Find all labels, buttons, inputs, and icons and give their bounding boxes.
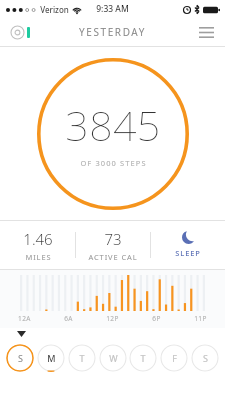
staticText: 12A xyxy=(18,314,31,323)
staticText: SLEEP xyxy=(175,248,201,258)
staticText: 73 xyxy=(104,229,122,249)
staticText: 12P xyxy=(106,314,119,323)
button[interactable]: W xyxy=(99,344,127,372)
staticText: T xyxy=(140,352,146,364)
button[interactable]: F xyxy=(160,344,188,372)
staticText: 6P xyxy=(152,314,161,323)
button[interactable]: T xyxy=(129,344,157,372)
staticText: S xyxy=(203,352,208,364)
staticText: 11P xyxy=(194,314,207,323)
staticText: Verizon xyxy=(40,4,69,15)
staticText: 3845 xyxy=(65,97,161,153)
button[interactable]: Steps progress xyxy=(37,58,189,210)
staticText: ACTIVE CAL xyxy=(88,252,138,262)
button[interactable]: M xyxy=(37,344,65,372)
staticText: OF 3000 STEPS xyxy=(80,158,147,168)
button[interactable]: 73 xyxy=(76,221,150,269)
staticText: T xyxy=(79,352,85,364)
button[interactable]: S xyxy=(191,344,219,372)
button[interactable]: S xyxy=(6,344,34,372)
button[interactable]: Menu xyxy=(194,22,219,43)
staticText: M xyxy=(47,352,56,364)
staticText: W xyxy=(109,352,118,364)
staticText: 6A xyxy=(64,314,73,323)
staticText: YESTERDAY xyxy=(79,25,146,39)
button[interactable]: T xyxy=(68,344,96,372)
staticText: F xyxy=(172,352,177,364)
staticText: 1.46 xyxy=(23,229,53,249)
button[interactable]: Device status xyxy=(8,23,32,42)
button[interactable]: SLEEP xyxy=(151,221,225,269)
staticText: S xyxy=(18,352,23,364)
button[interactable]: 1.46 xyxy=(0,221,75,269)
staticText: MILES xyxy=(25,252,52,262)
staticText: 9:33 AM xyxy=(96,3,129,15)
